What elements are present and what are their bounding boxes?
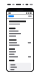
button[interactable]: Back xyxy=(7,14,33,18)
